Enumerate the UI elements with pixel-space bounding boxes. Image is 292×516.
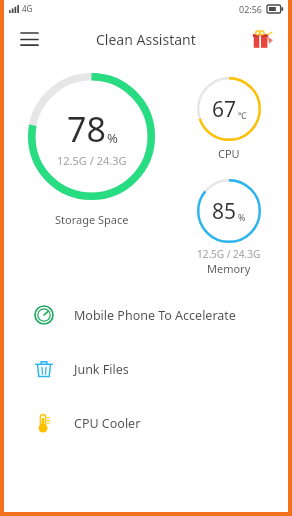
- staticText: CPU: [218, 146, 240, 161]
- staticText: 78: [67, 106, 106, 152]
- staticText: 85: [212, 197, 237, 226]
- button[interactable]: Junk Files: [15, 346, 277, 392]
- staticText: CPU Cooler: [74, 415, 141, 432]
- staticText: 4G: [22, 3, 33, 14]
- button[interactable]: Gift: [246, 22, 280, 56]
- staticText: 12.5G / 24.3G: [57, 153, 127, 168]
- staticText: ℃: [238, 109, 247, 121]
- staticText: Mobile Phone To Accelerate: [74, 307, 236, 324]
- staticText: 12.5G / 24.3G: [197, 247, 261, 261]
- staticText: Junk Files: [74, 361, 129, 378]
- staticText: 67: [212, 95, 237, 124]
- staticText: %: [238, 211, 246, 223]
- button[interactable]: CPU Cooler: [15, 400, 277, 446]
- staticText: %: [107, 129, 118, 147]
- staticText: Storage Space: [55, 212, 129, 227]
- staticText: Memory: [207, 261, 251, 276]
- staticText: Clean Assistant: [96, 30, 196, 49]
- button[interactable]: Mobile Phone To Accelerate: [15, 292, 277, 338]
- staticText: 02:56: [239, 3, 263, 15]
- button[interactable]: Menu: [12, 22, 46, 56]
